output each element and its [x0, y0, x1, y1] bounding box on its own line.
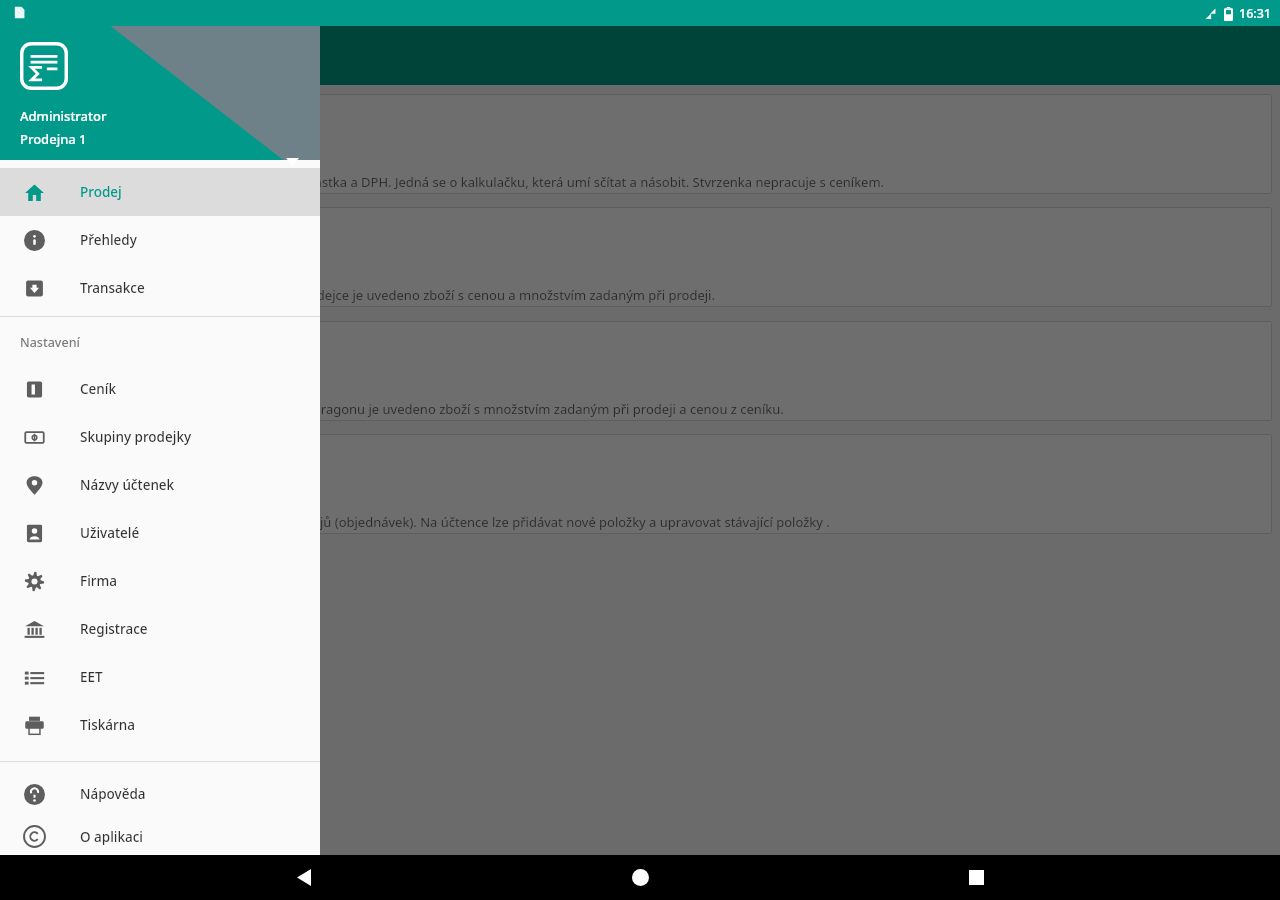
button[interactable]: Přehledy: [0, 216, 320, 264]
staticText: Prodej s ceníkem bez tisku cen. Na vytiš…: [24, 286, 715, 304]
button[interactable]: Firma: [0, 557, 320, 605]
staticText: Skupiny prodejky: [80, 428, 192, 446]
staticText: Prodej s ceníkem a tiskem cen. Na vytišt…: [24, 400, 784, 418]
button[interactable]: Recent apps: [944, 855, 1008, 900]
staticText: Prodejna 1: [20, 130, 87, 148]
button[interactable]: Nápověda: [0, 770, 320, 818]
staticText: Transakce: [80, 279, 145, 297]
button[interactable]: Home: [608, 855, 672, 900]
staticText: Nápověda: [80, 785, 146, 803]
button[interactable]: Registrace: [0, 605, 320, 653]
staticText: Registrace: [80, 620, 148, 638]
button[interactable]: Prodej s ceníkem a tiskem cen. Na vytišt…: [8, 321, 1272, 421]
button[interactable]: Skupiny prodejky: [0, 413, 320, 461]
staticText: Nastavení: [20, 334, 80, 351]
button[interactable]: Transakce: [0, 264, 320, 312]
button[interactable]: Účtenky umožňují uložení rozpracovaných …: [8, 434, 1272, 534]
button[interactable]: App logo: [0, 26, 320, 160]
staticText: Účtenky umožňují uložení rozpracovaných …: [24, 513, 830, 531]
button[interactable]: Prodej: [0, 168, 320, 216]
button[interactable]: Prodej s ceníkem bez tisku cen. Na vytiš…: [8, 207, 1272, 307]
staticText: EET: [80, 668, 103, 686]
staticText: 16:31: [1239, 5, 1272, 22]
staticText: O aplikaci: [80, 828, 144, 846]
staticText: Firma: [80, 572, 117, 590]
button[interactable]: Tiskárna: [0, 701, 320, 749]
staticText: Uživatelé: [80, 524, 140, 542]
staticText: Prodej: [80, 183, 122, 201]
staticText: Přehledy: [80, 231, 137, 249]
button[interactable]: Prodej bez ceníku. Při prodeji se zadává…: [8, 94, 1272, 194]
staticText: Administrator: [20, 107, 107, 125]
staticText: Prodej bez ceníku. Při prodeji se zadává…: [24, 173, 885, 191]
button[interactable]: Uživatelé: [0, 509, 320, 557]
staticText: Tiskárna: [80, 716, 135, 734]
button[interactable]: EET: [0, 653, 320, 701]
button[interactable]: Názvy účtenek: [0, 461, 320, 509]
button[interactable]: Switch account: [278, 148, 306, 176]
other: App logo: [20, 42, 68, 90]
staticText: Ceník: [80, 380, 116, 398]
button[interactable]: O aplikaci: [0, 818, 320, 855]
staticText: Názvy účtenek: [80, 476, 175, 494]
button[interactable]: Ceník: [0, 365, 320, 413]
button[interactable]: Back: [272, 855, 336, 900]
